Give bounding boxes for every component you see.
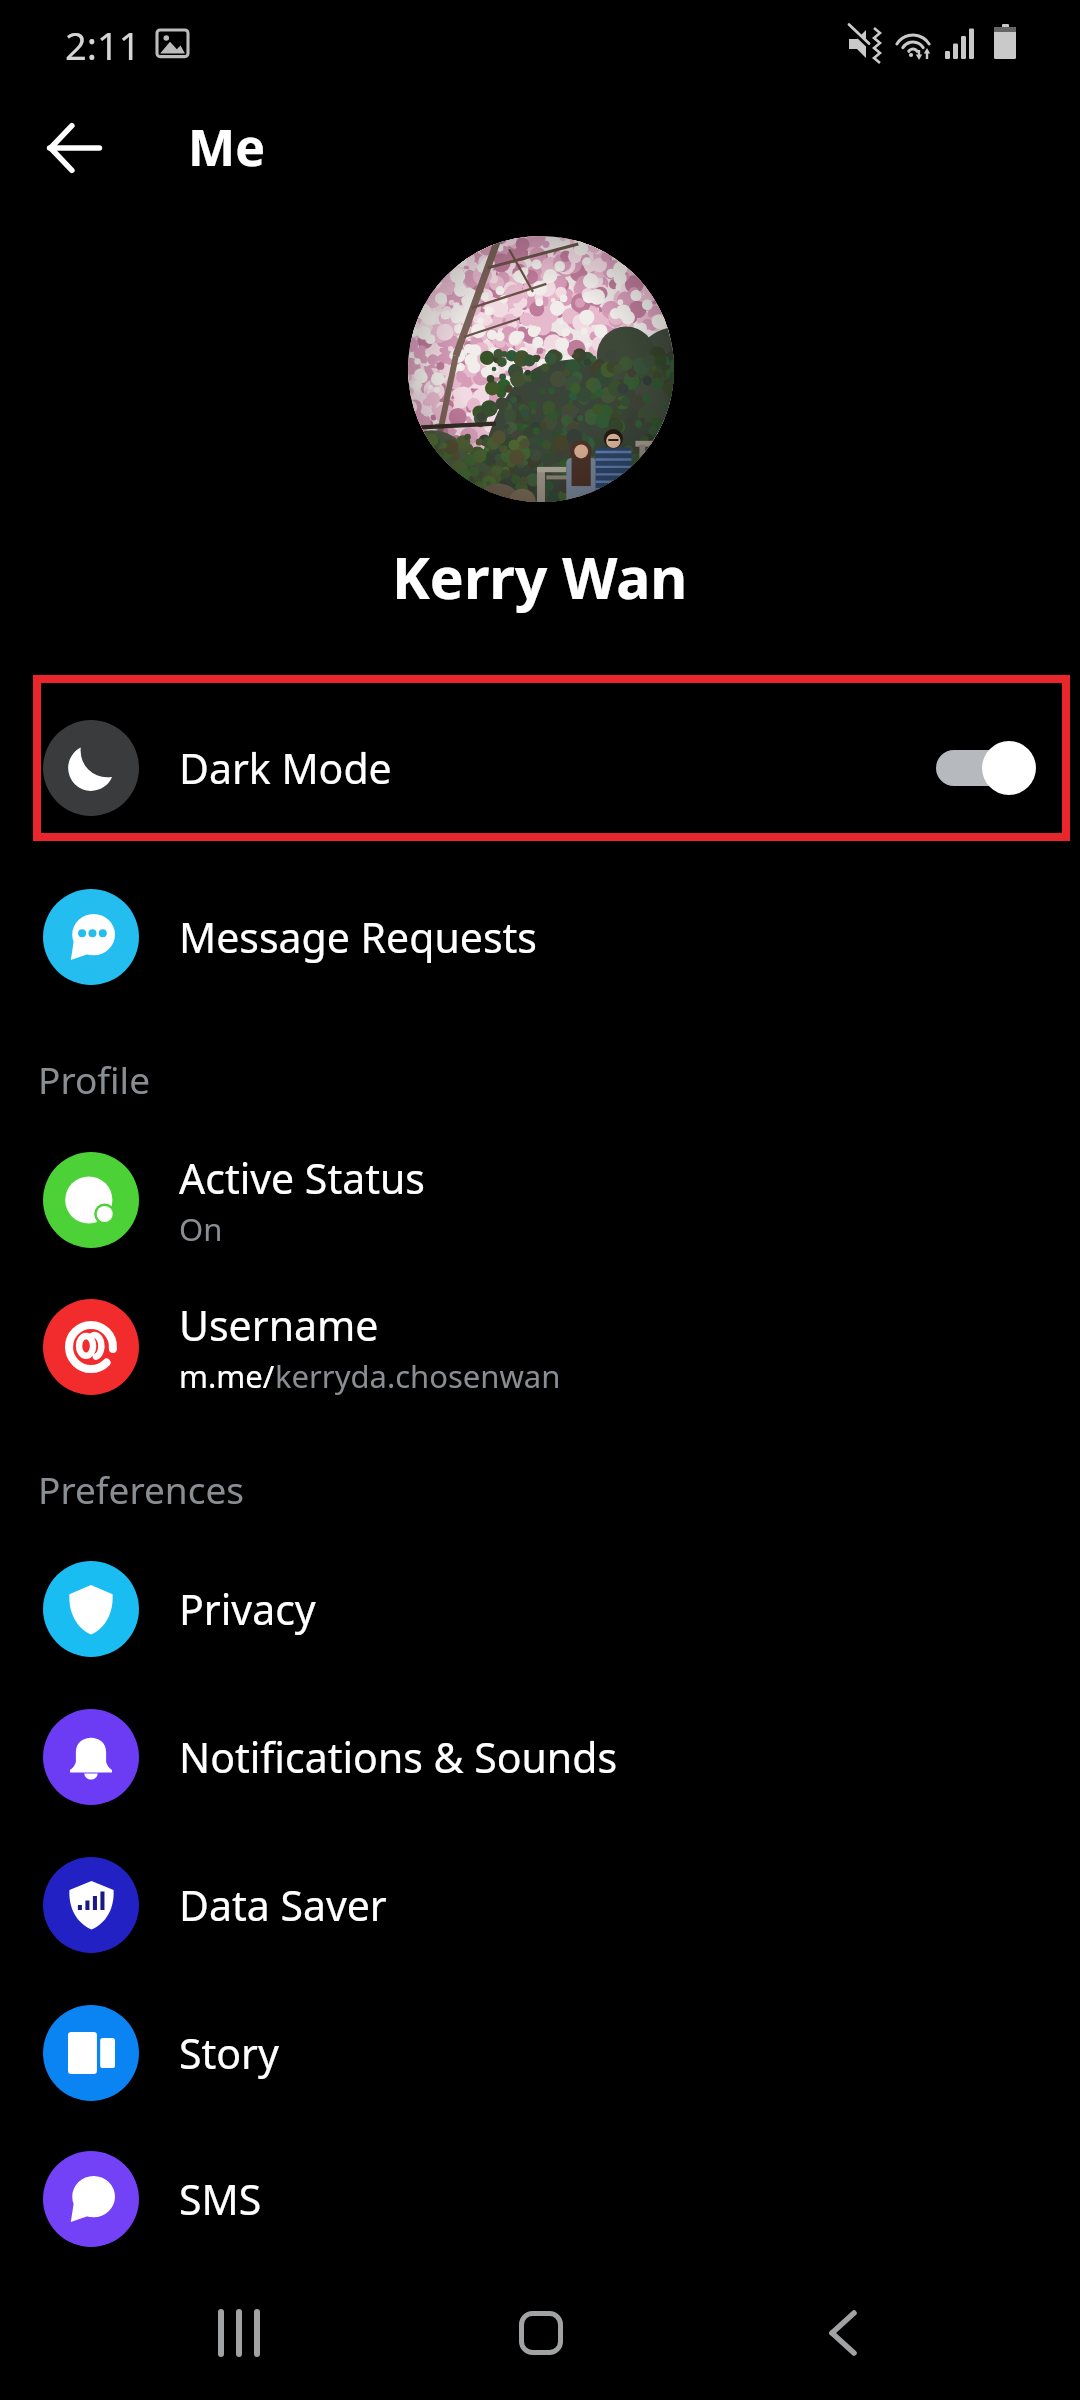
button[interactable]: Dark Mode	[0, 690, 1080, 846]
staticText: kerryda.chosenwan	[275, 1355, 561, 1397]
staticText: 2:11	[65, 19, 141, 71]
staticText: SMS	[179, 2171, 262, 2227]
staticText: Kerry Wan	[392, 538, 688, 616]
staticText: Privacy	[179, 1581, 316, 1637]
staticText: Dark Mode	[179, 740, 392, 796]
staticText: Profile	[38, 1054, 150, 1104]
staticText: Me	[188, 113, 265, 181]
button[interactable]: Privacy	[0, 1535, 1080, 1683]
button[interactable]: Recent apps	[196, 2290, 282, 2376]
staticText: On	[179, 1208, 223, 1250]
button[interactable]: Active Status	[0, 1126, 1080, 1274]
staticText: Notifications & Sounds	[179, 1729, 618, 1785]
staticText: Message Requests	[179, 909, 537, 965]
button[interactable]: Back	[28, 102, 120, 194]
button[interactable]: Dark Mode switch, on	[936, 741, 1036, 795]
staticText: Active Status	[179, 1150, 425, 1206]
button[interactable]: Notifications & Sounds	[0, 1683, 1080, 1831]
button[interactable]: Back	[800, 2290, 886, 2376]
staticText: Data Saver	[179, 1877, 387, 1933]
button[interactable]: Profile photo	[408, 236, 674, 502]
button[interactable]: Story	[0, 1979, 1080, 2127]
button[interactable]: Data Saver	[0, 1831, 1080, 1979]
staticText: m.me/	[179, 1355, 275, 1397]
button[interactable]: Home	[498, 2290, 584, 2376]
staticText: Story	[179, 2025, 279, 2081]
staticText: Preferences	[38, 1464, 245, 1514]
button[interactable]: Message Requests	[0, 863, 1080, 1011]
button[interactable]: SMS	[0, 2125, 1080, 2273]
staticText: Username	[179, 1297, 379, 1353]
button[interactable]: Username	[0, 1273, 1080, 1421]
